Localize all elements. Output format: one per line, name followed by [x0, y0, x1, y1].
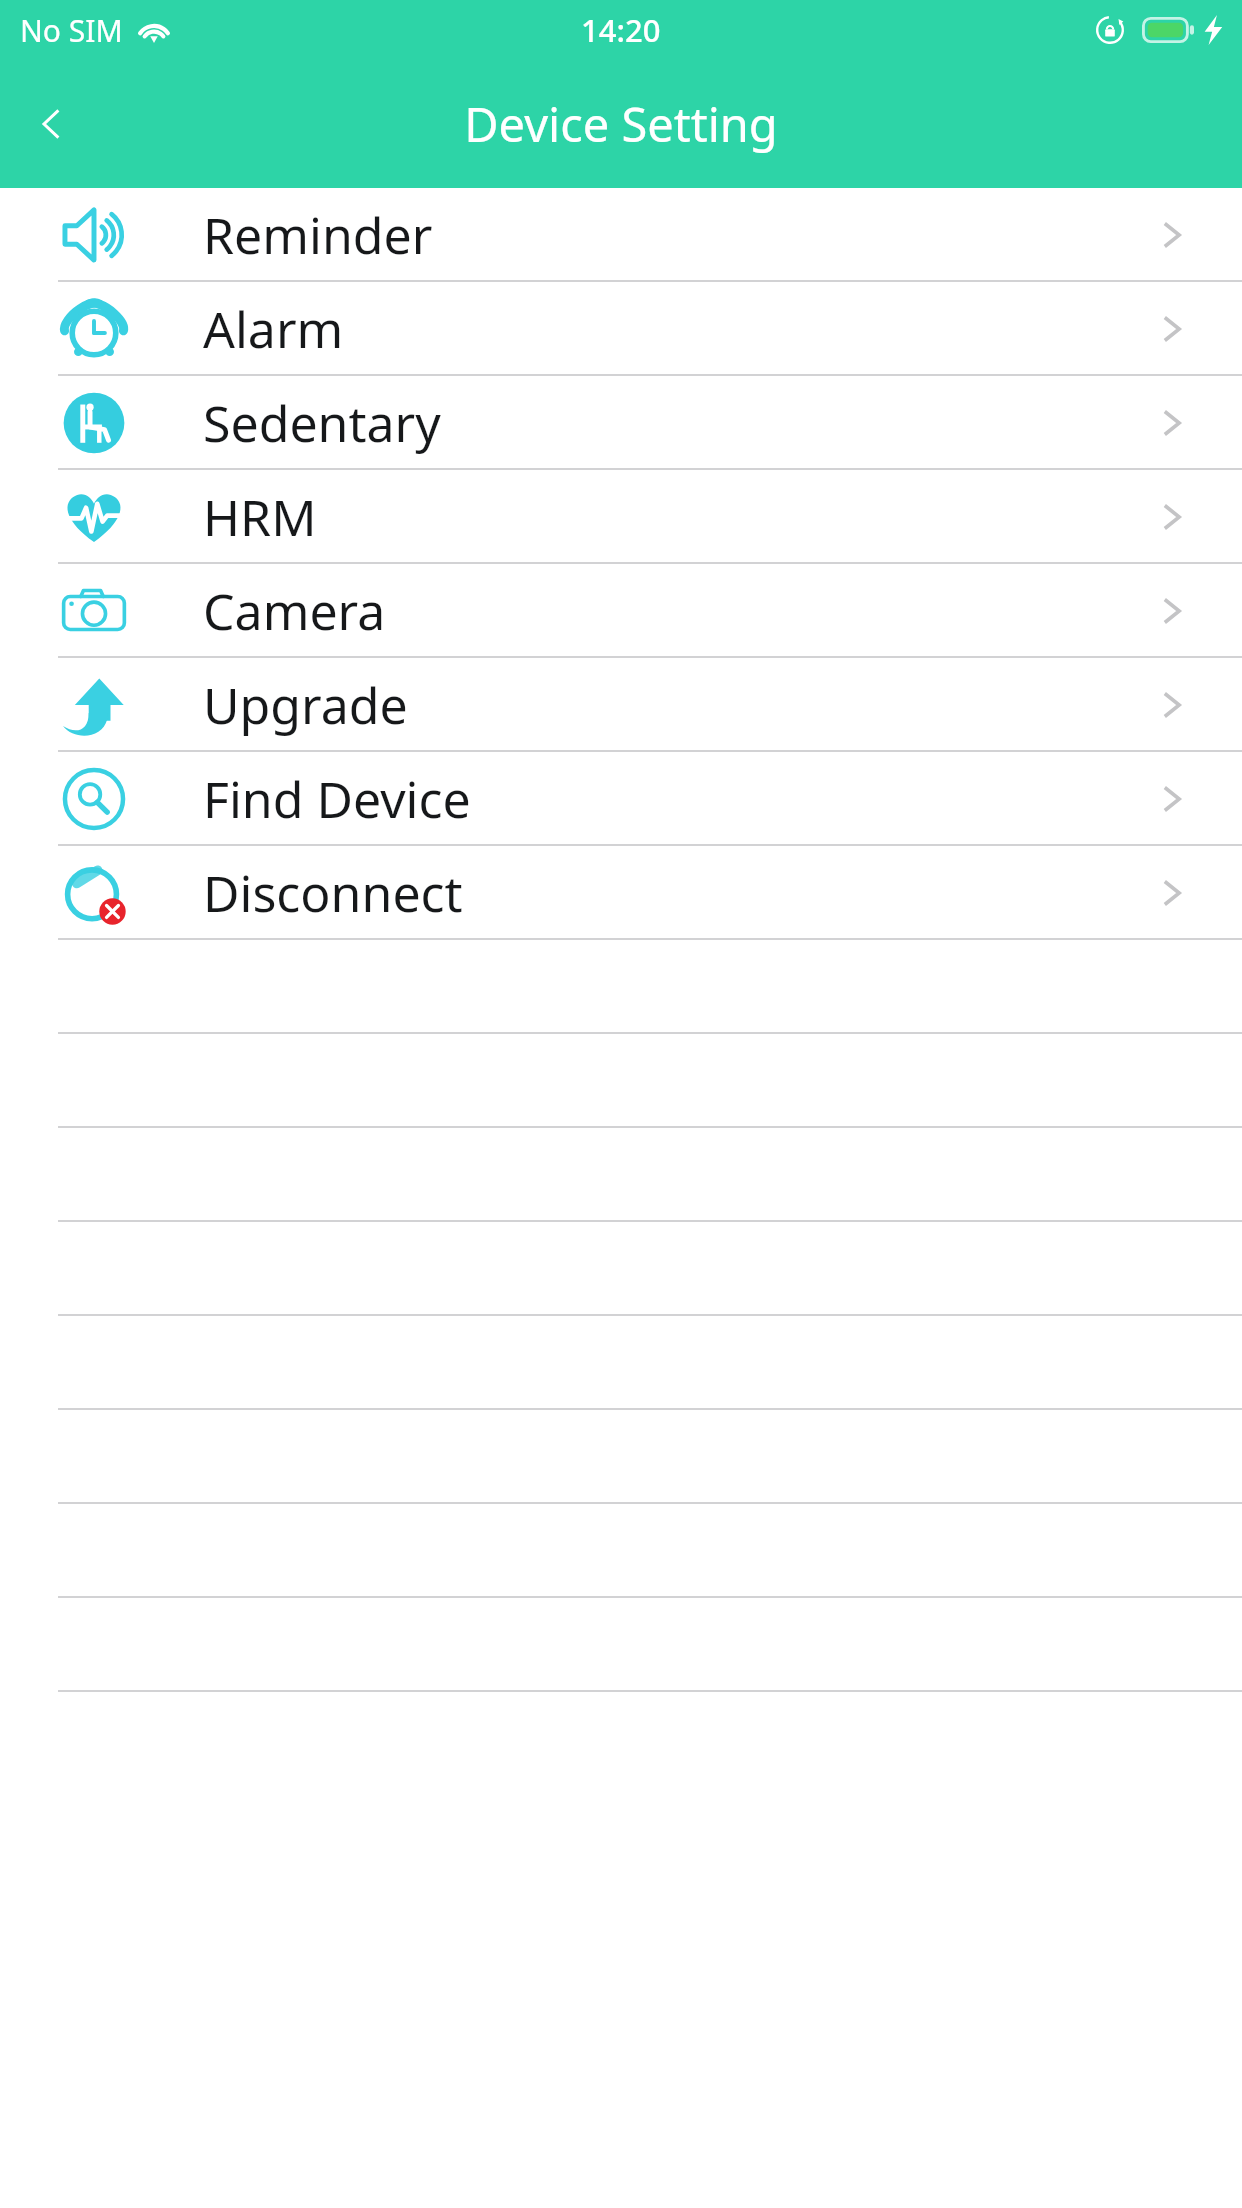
button[interactable]: Disconnect	[0, 846, 1242, 940]
button[interactable]: Camera	[0, 564, 1242, 658]
staticText: Device Setting	[464, 92, 778, 156]
staticText: No SIM	[20, 10, 123, 51]
button[interactable]: HRM	[0, 470, 1242, 564]
button[interactable]: Find Device	[0, 752, 1242, 846]
button[interactable]: Back	[0, 72, 104, 176]
button[interactable]: Reminder	[0, 188, 1242, 282]
staticText: Upgrade	[203, 671, 408, 739]
button[interactable]: Upgrade	[0, 658, 1242, 752]
staticText: Sedentary	[203, 389, 441, 457]
staticText: Find Device	[203, 765, 471, 833]
staticText: Alarm	[203, 295, 344, 363]
staticText: Camera	[203, 577, 386, 645]
staticText: HRM	[203, 483, 317, 551]
staticText: Reminder	[203, 201, 433, 269]
staticText: Disconnect	[203, 859, 463, 927]
button[interactable]: Sedentary	[0, 376, 1242, 470]
button[interactable]: Alarm	[0, 282, 1242, 376]
staticText: 14:20	[581, 9, 661, 51]
